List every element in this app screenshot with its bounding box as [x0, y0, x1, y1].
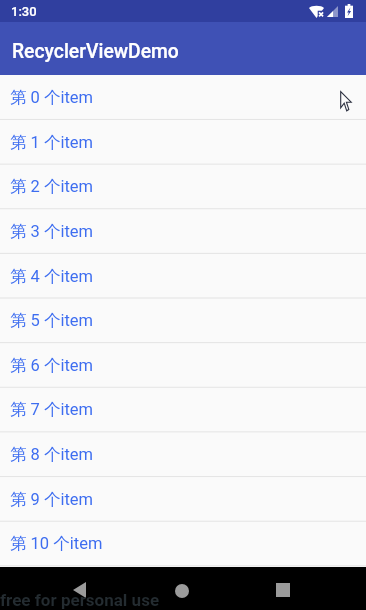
- staticText: 第 4 个item: [10, 266, 94, 287]
- button[interactable]: Home: [165, 574, 199, 608]
- staticText: 第 9 个item: [10, 489, 94, 510]
- staticText: 第 2 个item: [10, 176, 94, 197]
- button[interactable]: 第 1 个item: [0, 120, 366, 165]
- button[interactable]: 第 11 个item: [0, 566, 366, 610]
- staticText: 第 11 个item: [10, 578, 103, 599]
- button[interactable]: 第 0 个item: [0, 75, 366, 120]
- staticText: 第 0 个item: [10, 87, 94, 108]
- button[interactable]: 第 9 个item: [0, 477, 366, 522]
- staticText: 第 10 个item: [10, 533, 103, 554]
- staticText: 第 6 个item: [10, 355, 94, 376]
- staticText: 第 3 个item: [10, 221, 94, 242]
- staticText: 第 5 个item: [10, 310, 94, 331]
- button[interactable]: Back: [62, 573, 96, 607]
- button[interactable]: 第 2 个item: [0, 164, 366, 209]
- button[interactable]: 第 8 个item: [0, 432, 366, 477]
- staticText: 第 7 个item: [10, 399, 94, 420]
- button[interactable]: 第 4 个item: [0, 254, 366, 299]
- staticText: 第 8 个item: [10, 444, 94, 465]
- staticText: 1:30: [11, 4, 37, 19]
- button[interactable]: 第 7 个item: [0, 387, 366, 432]
- button[interactable]: 第 3 个item: [0, 209, 366, 254]
- staticText: RecyclerViewDemo: [12, 40, 179, 63]
- staticText: free for personal use: [0, 590, 160, 610]
- button[interactable]: 第 6 个item: [0, 343, 366, 388]
- button[interactable]: Recent apps: [266, 574, 300, 608]
- staticText: 第 1 个item: [10, 132, 94, 153]
- button[interactable]: 第 10 个item: [0, 521, 366, 566]
- button[interactable]: 第 5 个item: [0, 298, 366, 343]
